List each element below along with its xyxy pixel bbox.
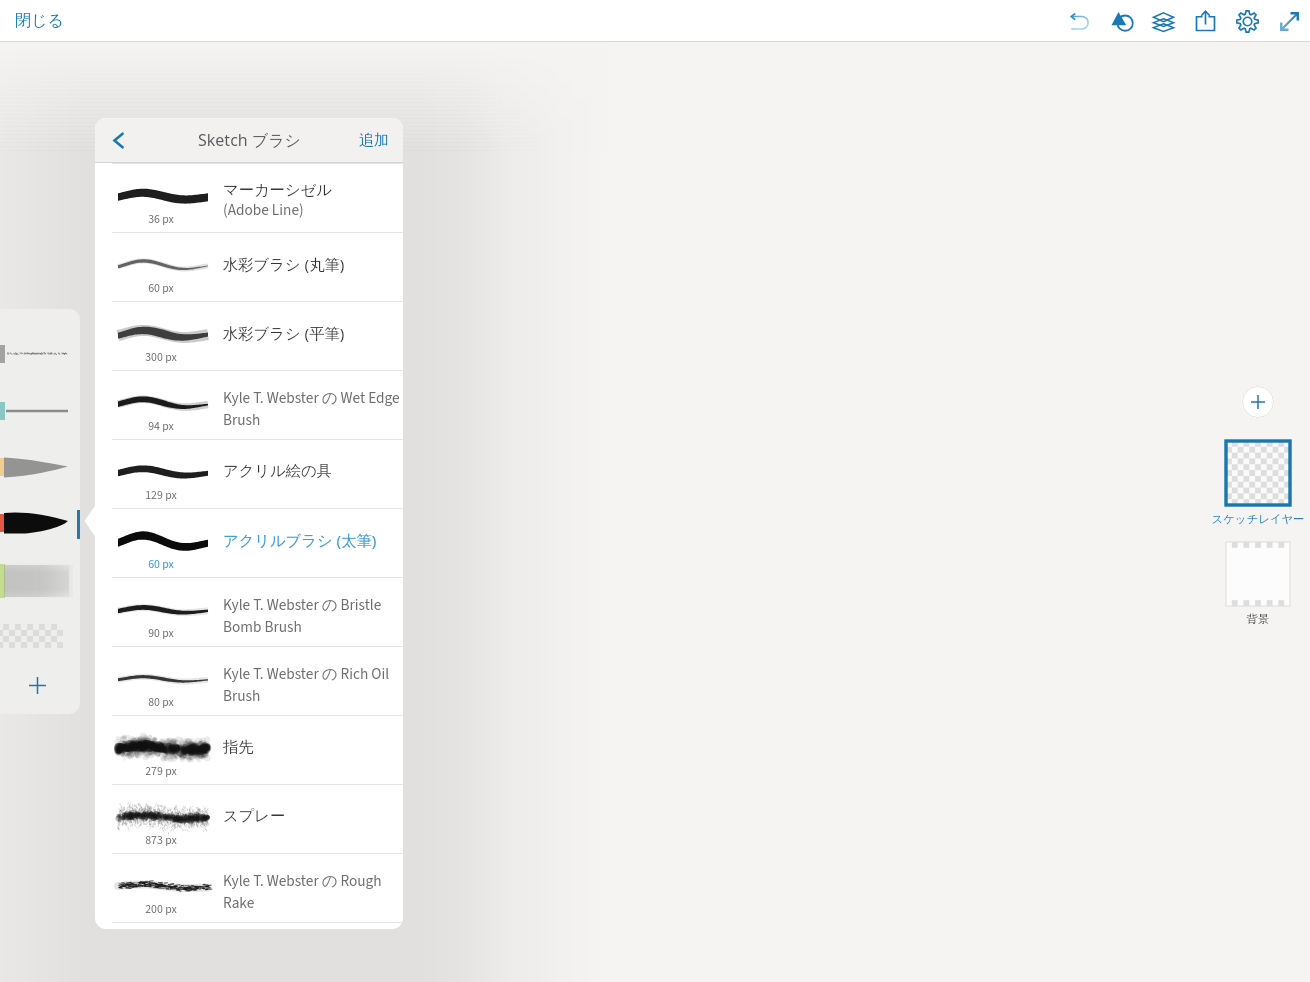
staticText: Rake: [223, 892, 255, 914]
button[interactable]: 36 px: [95, 163, 403, 232]
button[interactable]: 90 px: [95, 577, 403, 646]
staticText: アクリル絵の具: [223, 461, 332, 480]
button[interactable]: 279 px: [95, 715, 403, 784]
staticText: 90 px: [112, 625, 210, 642]
staticText: 80 px: [112, 694, 210, 711]
staticText: 873 px: [112, 832, 210, 849]
staticText: Kyle T. Webster の Rich Oil: [223, 663, 390, 685]
button[interactable]: Layers: [1142, 0, 1184, 42]
staticText: Bomb Brush: [223, 616, 302, 638]
button[interactable]: 80 px: [95, 646, 403, 715]
button[interactable]: Undo: [1058, 0, 1100, 42]
button[interactable]: Back: [95, 118, 141, 162]
button[interactable]: 129 px: [95, 439, 403, 508]
button[interactable]: 200 px: [95, 853, 403, 922]
staticText: スケッチレイヤー: [1196, 512, 1310, 526]
button[interactable]: Brush presets: [0, 309, 80, 714]
button[interactable]: 300 px: [95, 301, 403, 370]
staticText: 背景: [1196, 612, 1310, 626]
staticText: 閉じる: [15, 11, 64, 31]
staticText: アクリルブラシ (太筆): [223, 530, 377, 551]
button[interactable]: Background layer thumbnail: [1226, 542, 1290, 606]
staticText: (Adobe Line): [223, 199, 304, 221]
button[interactable]: 閉じる: [5, 4, 74, 38]
button[interactable]: Settings: [1226, 0, 1268, 42]
staticText: Kyle T. Webster の Bristle: [223, 594, 382, 616]
staticText: スプレー: [223, 806, 286, 825]
button[interactable]: Add brush: [17, 665, 57, 705]
staticText: 60 px: [112, 556, 210, 573]
staticText: 36 px: [112, 211, 210, 228]
staticText: Kyle T. Webster の Wet Edge: [223, 387, 400, 409]
staticText: マーカーシゼル: [223, 180, 332, 199]
staticText: 水彩ブラシ (平筆): [223, 323, 345, 344]
staticText: 94 px: [112, 418, 210, 435]
staticText: 水彩ブラシ (丸筆): [223, 254, 345, 275]
staticText: Brush: [223, 409, 261, 431]
staticText: 300 px: [112, 349, 210, 366]
button[interactable]: 追加: [345, 120, 403, 161]
button[interactable]: Share: [1184, 0, 1226, 42]
staticText: Kyle T. Webster の Rough: [223, 870, 382, 892]
staticText: Brush: [223, 685, 261, 707]
button[interactable]: 94 px: [95, 370, 403, 439]
staticText: Sketch ブラシ: [198, 129, 301, 151]
button[interactable]: Fullscreen: [1268, 0, 1310, 42]
button[interactable]: 60 px: [95, 508, 403, 577]
button[interactable]: Shapes: [1100, 0, 1142, 42]
staticText: 200 px: [112, 901, 210, 918]
staticText: 追加: [359, 131, 389, 150]
staticText: 60 px: [112, 280, 210, 297]
button[interactable]: Sketch layer thumbnail: [1226, 441, 1290, 505]
staticText: 279 px: [112, 763, 210, 780]
button[interactable]: 873 px: [95, 784, 403, 853]
staticText: 指先: [223, 737, 254, 756]
button[interactable]: 60 px: [95, 232, 403, 301]
button[interactable]: Add layer: [1242, 386, 1274, 418]
staticText: 129 px: [112, 487, 210, 504]
